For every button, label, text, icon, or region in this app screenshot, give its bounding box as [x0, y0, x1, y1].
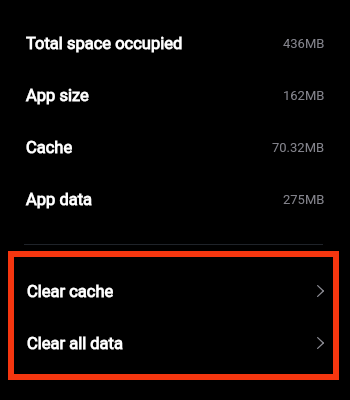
staticText: 275MB — [283, 192, 325, 207]
button[interactable]: Clear all data — [14, 317, 333, 369]
staticText: 70.32MB — [272, 140, 325, 155]
staticText: Clear cache — [27, 282, 114, 301]
button[interactable]: Clear cache — [14, 265, 333, 317]
other: Open Clear cache — [317, 285, 324, 297]
staticText: Total space occupied — [26, 34, 183, 53]
staticText: 162MB — [283, 88, 325, 103]
staticText: App size — [26, 86, 89, 105]
staticText: 436MB — [283, 36, 325, 51]
staticText: Clear all data — [27, 334, 123, 353]
staticText: Cache — [26, 138, 73, 157]
other: Open Clear all data — [317, 337, 324, 349]
staticText: App data — [26, 190, 93, 209]
